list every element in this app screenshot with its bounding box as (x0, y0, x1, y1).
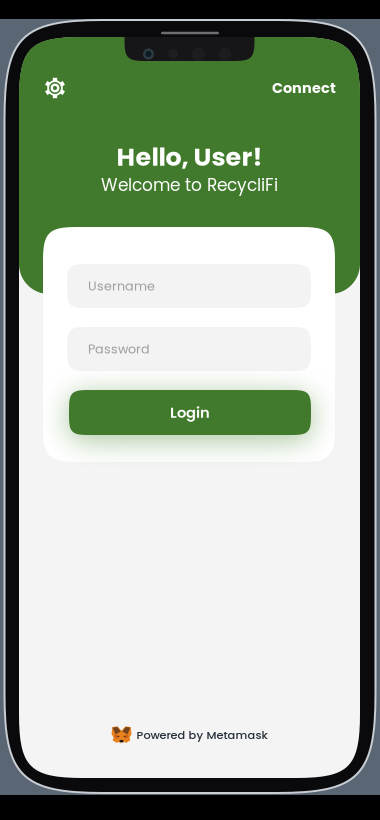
button[interactable]: Login (69, 390, 311, 435)
staticText: Hello, User! (116, 139, 262, 175)
staticText: Powered by Metamask (136, 727, 267, 743)
staticText: Password (88, 340, 150, 358)
staticText: Welcome to RecycliFi (101, 173, 278, 197)
staticText: Login (170, 402, 210, 423)
button[interactable]: Connect (271, 70, 337, 106)
button[interactable]: Password (67, 327, 311, 371)
staticText: Username (88, 277, 155, 295)
button[interactable]: Username (67, 264, 311, 308)
staticText: Connect (272, 78, 336, 98)
button[interactable]: Settings (35, 68, 75, 108)
